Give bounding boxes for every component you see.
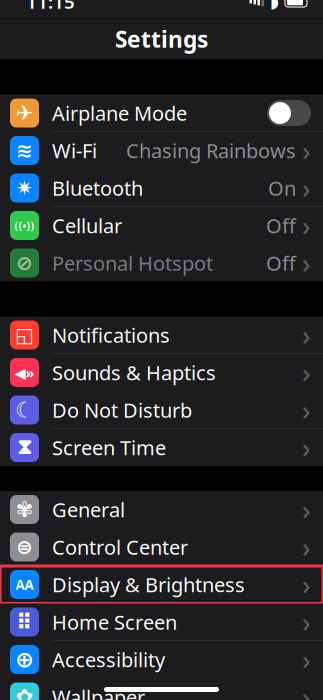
- staticText: On: [268, 175, 296, 201]
- staticText: ›: [302, 355, 311, 390]
- staticText: Accessibility: [52, 646, 165, 673]
- staticText: ◀»: [14, 363, 34, 382]
- staticText: ›: [302, 245, 311, 281]
- staticText: ≋: [16, 139, 33, 162]
- staticText: Notifications: [52, 322, 170, 348]
- staticText: Chasing Rainbows: [126, 137, 296, 164]
- button[interactable]: ✿: [0, 678, 323, 700]
- staticText: Wallpaper: [52, 684, 145, 700]
- button[interactable]: ⊘: [0, 244, 323, 281]
- staticText: Home Screen: [52, 609, 177, 635]
- staticText: Off: [266, 250, 296, 276]
- staticText: ›: [302, 642, 311, 677]
- staticText: ›: [302, 529, 311, 565]
- staticText: Display & Brightness: [52, 571, 245, 598]
- staticText: ☾: [15, 398, 34, 422]
- staticText: Sounds & Haptics: [52, 359, 216, 386]
- button[interactable]: ☾: [0, 391, 323, 429]
- staticText: ›: [302, 679, 311, 700]
- staticText: AA: [15, 576, 33, 593]
- staticText: ⊘: [16, 252, 33, 274]
- button[interactable]: AA: [0, 566, 323, 603]
- staticText: Airplane Mode: [52, 100, 187, 126]
- staticText: Screen Time: [52, 434, 166, 461]
- staticText: ◱: [15, 324, 34, 346]
- staticText: Control Center: [52, 534, 188, 560]
- staticText: Personal Hotspot: [52, 250, 213, 276]
- staticText: Do Not Disturb: [52, 397, 192, 423]
- staticText: ✿: [15, 685, 33, 700]
- button[interactable]: ⧗: [0, 429, 323, 466]
- staticText: ›: [302, 567, 311, 602]
- button[interactable]: ◀»: [0, 354, 323, 391]
- staticText: ⠿: [16, 610, 33, 634]
- staticText: ((•)): [14, 218, 34, 233]
- staticText: ›: [302, 492, 311, 527]
- staticText: Off: [266, 212, 296, 239]
- staticText: Settings: [115, 24, 208, 54]
- button[interactable]: ≋: [0, 132, 323, 169]
- button[interactable]: ✷: [0, 169, 323, 207]
- staticText: ✾: [15, 497, 33, 522]
- staticText: Bluetooth: [52, 175, 143, 201]
- button[interactable]: ⊕: [0, 641, 323, 678]
- staticText: ›: [302, 430, 311, 465]
- staticText: ⊕: [15, 647, 34, 672]
- staticText: ◗: [270, 0, 279, 11]
- staticText: ⊜: [16, 536, 33, 558]
- staticText: ⧗: [17, 437, 32, 458]
- staticText: ›: [302, 133, 311, 168]
- button[interactable]: ⠿: [0, 603, 323, 641]
- button[interactable]: ✾: [0, 491, 323, 528]
- staticText: General: [52, 496, 125, 523]
- staticText: ›: [302, 170, 311, 206]
- button[interactable]: ⊜: [0, 528, 323, 566]
- staticText: 11:15: [26, 0, 75, 14]
- staticText: ›: [302, 392, 311, 428]
- staticText: Wi-Fi: [52, 137, 97, 164]
- button[interactable]: ✈: [0, 94, 323, 132]
- staticText: ›: [302, 208, 311, 243]
- staticText: ✈: [15, 101, 33, 125]
- staticText: Cellular: [52, 212, 122, 239]
- staticText: ›: [302, 604, 311, 640]
- staticText: ›: [302, 317, 311, 353]
- staticText: ✷: [16, 177, 33, 199]
- button[interactable]: ((•)): [0, 207, 323, 244]
- button[interactable]: ◱: [0, 316, 323, 354]
